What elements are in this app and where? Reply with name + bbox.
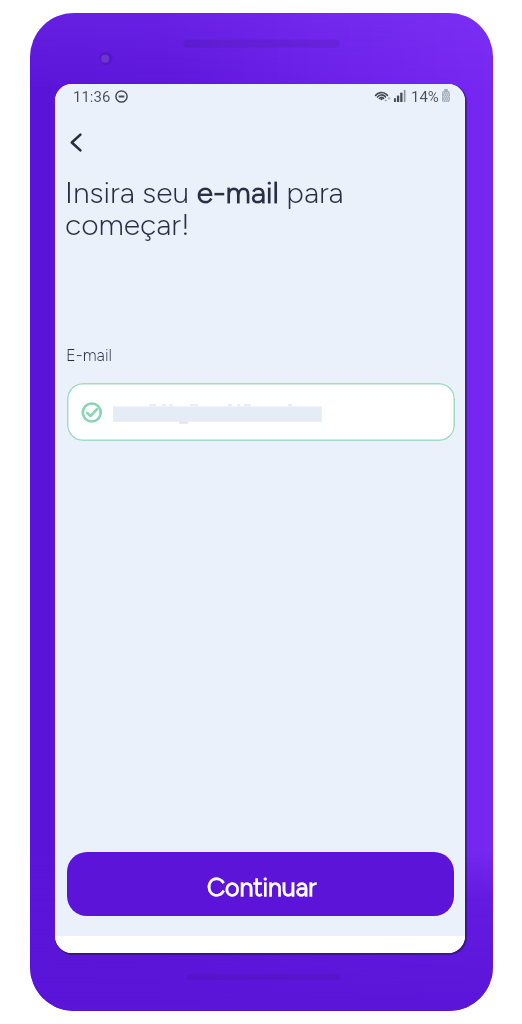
other: Wi-Fi [374, 89, 389, 101]
button[interactable]: Voltar [57, 123, 95, 161]
button[interactable] [67, 383, 455, 441]
other: Sinal [394, 90, 406, 102]
staticText: Insira seu e-mail para começar! [65, 174, 365, 243]
staticText: 11:36 [73, 88, 111, 106]
staticText: 14% [411, 88, 439, 106]
other: Bateria [442, 89, 450, 102]
button[interactable]: Continuar [67, 852, 454, 916]
staticText: E-mail [66, 345, 112, 365]
staticText: Continuar [207, 872, 317, 902]
